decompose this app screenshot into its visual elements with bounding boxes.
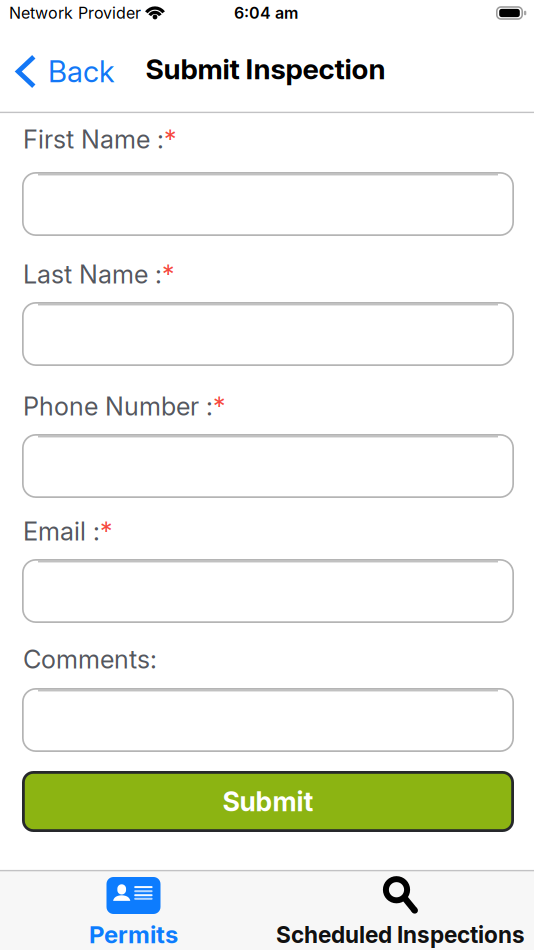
staticText: Scheduled Inspections xyxy=(276,921,525,948)
button[interactable]: Last Name xyxy=(22,302,514,366)
button[interactable]: Phone Number xyxy=(22,434,514,498)
staticText: * xyxy=(164,124,176,154)
staticText: Last Name : xyxy=(23,259,162,289)
button[interactable]: Back xyxy=(15,54,115,89)
staticText: Submit Inspection xyxy=(145,52,385,85)
staticText: Network Provider xyxy=(9,4,141,22)
staticText: Phone Number : xyxy=(23,391,213,421)
button[interactable]: First Name xyxy=(22,172,514,236)
staticText: Email : xyxy=(23,516,100,546)
button[interactable]: Comments xyxy=(22,688,514,752)
staticText: Comments: xyxy=(23,644,157,674)
button[interactable]: Permits xyxy=(89,877,178,949)
button[interactable]: Email xyxy=(22,559,514,623)
staticText: Permits xyxy=(89,920,178,949)
staticText: Submit xyxy=(222,786,313,817)
staticText: First Name : xyxy=(23,124,164,154)
staticText: * xyxy=(213,391,225,421)
staticText: Back xyxy=(48,54,115,89)
staticText: 6:04 am xyxy=(234,4,298,22)
button[interactable]: Scheduled Inspections xyxy=(276,874,525,948)
staticText: * xyxy=(100,516,112,546)
button[interactable]: Submit xyxy=(22,771,514,832)
staticText: * xyxy=(162,259,174,289)
